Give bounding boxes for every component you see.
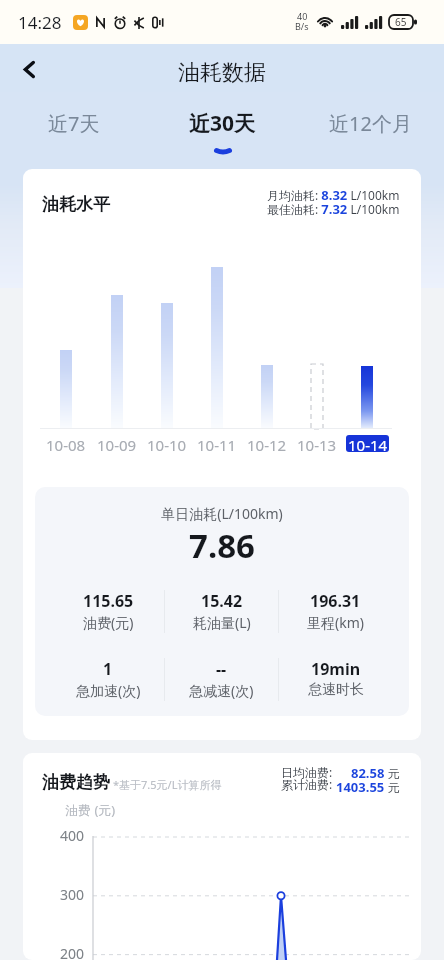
staticText: B/s — [295, 20, 309, 32]
staticText: 耗油量(L) — [193, 613, 251, 632]
button[interactable]: 近12个月 — [296, 94, 444, 154]
staticText: 14:28 — [18, 11, 62, 34]
staticText: 10-12 — [247, 435, 287, 452]
staticText: 油耗水平 — [42, 194, 110, 215]
staticText: 日均油费: — [281, 764, 333, 780]
staticText: 油费 (元) — [65, 801, 116, 819]
staticText: 近7天 — [48, 110, 100, 137]
button[interactable]: 近7天 — [0, 94, 148, 154]
staticText: 10-13 — [297, 435, 337, 452]
staticText: 油费趋势 — [42, 772, 110, 793]
staticText: 40 — [297, 10, 308, 22]
button[interactable]: 近30天 — [148, 94, 296, 154]
staticText: 1403.55 元 — [336, 778, 400, 796]
staticText: 10-14 — [348, 435, 388, 452]
staticText: *基于7.5元/L计算所得 — [113, 777, 222, 792]
staticText: 里程(km) — [307, 613, 364, 632]
staticText: 200 — [60, 944, 85, 960]
staticText: 400 — [60, 826, 85, 845]
staticText: 65 — [395, 15, 407, 29]
staticText: 近30天 — [189, 109, 256, 138]
staticText: 累计油费: — [281, 776, 333, 792]
staticText: 怠速时长 — [308, 681, 364, 699]
staticText: -- — [216, 658, 227, 680]
button[interactable]: Back — [9, 49, 49, 89]
staticText: 油耗数据 — [178, 59, 266, 87]
staticText: 油费(元) — [83, 613, 134, 632]
staticText: 急加速(次) — [76, 681, 141, 700]
staticText: 10-08 — [46, 435, 86, 452]
staticText: 7.86 — [35, 523, 409, 568]
staticText: 82.58 元 — [351, 764, 400, 782]
staticText: 月均油耗: 8.32 L/100km — [267, 186, 400, 204]
staticText: 10-10 — [147, 435, 187, 452]
staticText: 10-09 — [97, 435, 137, 452]
staticText: 近12个月 — [329, 110, 412, 137]
staticText: 15.42 — [201, 590, 243, 612]
staticText: 1 — [103, 658, 113, 680]
staticText: 19min — [311, 658, 361, 680]
staticText: 300 — [60, 885, 85, 904]
staticText: 单日油耗(L/100km) — [35, 504, 409, 523]
staticText: 最佳油耗: 7.32 L/100km — [267, 200, 400, 218]
staticText: 急减速(次) — [189, 681, 254, 700]
staticText: 10-11 — [197, 435, 237, 452]
staticText: 196.31 — [310, 590, 361, 612]
staticText: 115.65 — [83, 590, 134, 612]
